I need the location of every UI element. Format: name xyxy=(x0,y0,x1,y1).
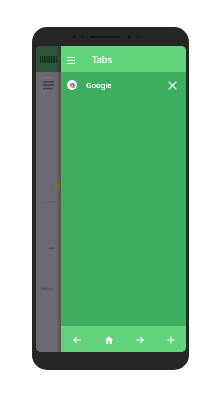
button[interactable]: Google xyxy=(61,72,186,97)
button[interactable]: Home xyxy=(93,326,124,352)
button[interactable]: Menu xyxy=(63,52,78,67)
button[interactable]: Forward xyxy=(124,326,155,352)
staticText: Tabs xyxy=(92,53,113,66)
button[interactable]: New tab xyxy=(155,326,186,352)
button[interactable]: Back xyxy=(61,326,93,352)
staticText: Google xyxy=(86,80,112,90)
button[interactable]: Close tab xyxy=(164,77,180,93)
